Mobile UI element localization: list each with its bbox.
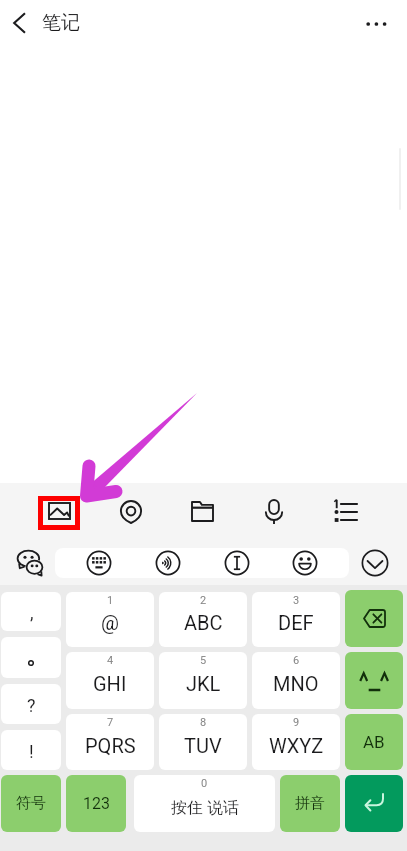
staticText: 按住 说话 — [171, 798, 239, 818]
button[interactable]: 4 — [66, 652, 154, 709]
staticText: , — [30, 602, 34, 623]
button[interactable]: Comma — [1, 592, 61, 631]
button[interactable]: Emoji — [289, 547, 321, 579]
staticText: JKL — [186, 672, 221, 695]
staticText: TUV — [184, 734, 222, 757]
staticText: 7 — [107, 716, 114, 729]
button[interactable]: 123 — [66, 775, 126, 832]
button[interactable]: Insert image — [38, 496, 80, 530]
staticText: DEF — [278, 611, 314, 634]
button[interactable]: Kaomoji — [345, 652, 403, 709]
button[interactable]: Location — [115, 496, 147, 528]
staticText: ! — [29, 741, 34, 762]
staticText: 6 — [293, 654, 300, 667]
button[interactable]: 2 — [159, 592, 247, 647]
button[interactable]: WeChat — [14, 549, 46, 581]
button[interactable]: 6 — [252, 652, 340, 709]
staticText: 符号 — [16, 794, 46, 813]
button[interactable]: 拼音 — [280, 775, 340, 832]
staticText: 4 — [107, 654, 114, 667]
button[interactable]: 3 — [252, 592, 340, 647]
button[interactable]: Files — [186, 496, 218, 528]
button[interactable]: List — [329, 496, 361, 528]
staticText: MNO — [273, 672, 319, 695]
button[interactable]: Backspace — [345, 590, 403, 647]
button[interactable]: Enter — [345, 775, 403, 832]
staticText: 1 — [107, 594, 114, 607]
button[interactable]: Voice — [152, 547, 184, 579]
button[interactable]: Hide keyboard — [359, 547, 391, 579]
button[interactable]: Keyboard — [83, 547, 115, 579]
button[interactable]: ! — [1, 730, 61, 770]
button[interactable]: 9 — [252, 714, 340, 770]
staticText: 8 — [200, 716, 207, 729]
staticText: 2 — [200, 594, 207, 607]
button[interactable]: 0 — [134, 775, 275, 832]
staticText: ABC — [184, 611, 223, 634]
staticText: 笔记 — [42, 11, 80, 35]
staticText: 拼音 — [295, 794, 325, 813]
staticText: 9 — [293, 716, 300, 729]
staticText: ? — [27, 695, 36, 716]
staticText: WXYZ — [269, 734, 324, 757]
staticText: 3 — [293, 594, 300, 607]
staticText: 0 — [201, 777, 208, 790]
button[interactable]: 符号 — [1, 775, 61, 832]
staticText: @ — [101, 611, 119, 634]
staticText: AB — [363, 732, 385, 752]
staticText: GHI — [93, 672, 127, 695]
staticText: 5 — [200, 654, 207, 667]
button[interactable]: Back — [3, 7, 35, 39]
button[interactable]: ? — [1, 684, 61, 724]
staticText: 123 — [83, 794, 110, 813]
button[interactable]: Full stop — [1, 637, 61, 678]
button[interactable]: 5 — [159, 652, 247, 709]
button[interactable]: Voice input — [258, 496, 290, 528]
button[interactable]: 8 — [159, 714, 247, 770]
button[interactable]: AB — [345, 714, 403, 770]
button[interactable]: 1 — [66, 592, 154, 647]
button[interactable]: 7 — [66, 714, 154, 770]
staticText: PQRS — [85, 734, 136, 757]
button[interactable]: Text cursor — [221, 547, 253, 579]
button[interactable]: More options — [360, 8, 392, 40]
